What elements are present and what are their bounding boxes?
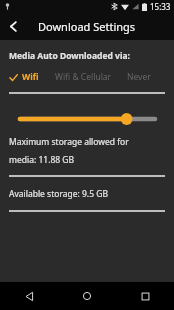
- staticText: media: 11.88 GB: [9, 154, 75, 166]
- button[interactable]: Wifi: [9, 71, 39, 83]
- button[interactable]: Maximum storage slider: [0, 112, 174, 126]
- button[interactable]: Recent apps: [116, 282, 174, 310]
- staticText: Never: [127, 71, 151, 83]
- button[interactable]: Never: [127, 71, 151, 83]
- staticText: 15:33: [150, 1, 171, 12]
- staticText: Wifi & Cellular: [55, 71, 112, 83]
- button[interactable]: Home: [58, 282, 116, 310]
- staticText: Download Settings: [38, 19, 136, 34]
- button[interactable]: Back: [0, 282, 58, 310]
- button[interactable]: Back: [0, 13, 27, 40]
- staticText: Maximum storage allowed for: [9, 136, 129, 148]
- staticText: Media Auto Downloaded via:: [9, 50, 130, 62]
- staticText: Wifi: [22, 71, 39, 83]
- button[interactable]: Wifi & Cellular: [55, 71, 112, 83]
- staticText: Available storage: 9.5 GB: [9, 188, 108, 200]
